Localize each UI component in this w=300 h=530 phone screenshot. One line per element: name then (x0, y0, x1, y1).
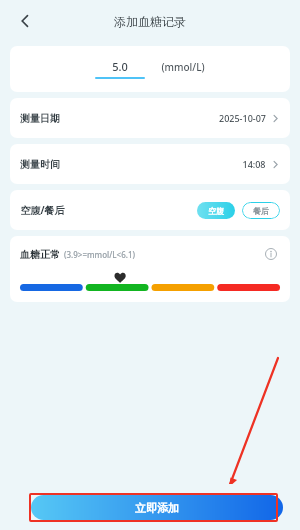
staticText: 5.0 (112, 59, 128, 74)
button[interactable]: 测量时间 (10, 144, 290, 184)
button[interactable]: 空腹 (197, 202, 235, 219)
staticText: 空腹/餐后 (20, 203, 65, 217)
staticText: 测量时间 (20, 158, 60, 171)
staticText: 14:08 (242, 158, 266, 170)
staticText: 添加血糖记录 (114, 14, 186, 29)
staticText: 2025-10-07 (219, 112, 266, 124)
button[interactable]: 立即添加 (31, 495, 283, 520)
staticText: (mmol/L) (161, 60, 205, 74)
staticText: 血糖正常 (20, 248, 60, 261)
staticText: 测量日期 (20, 112, 60, 125)
staticText: 立即添加 (135, 501, 179, 515)
staticText: 空腹 (208, 206, 224, 216)
button[interactable]: 测量日期 (10, 98, 290, 138)
staticText: 餐后 (253, 206, 269, 216)
button[interactable]: 餐后 (242, 202, 280, 219)
button[interactable]: Back (8, 4, 42, 38)
button[interactable]: Info (262, 245, 280, 263)
staticText: (3.9>=mmol/L<6.1) (64, 249, 135, 260)
